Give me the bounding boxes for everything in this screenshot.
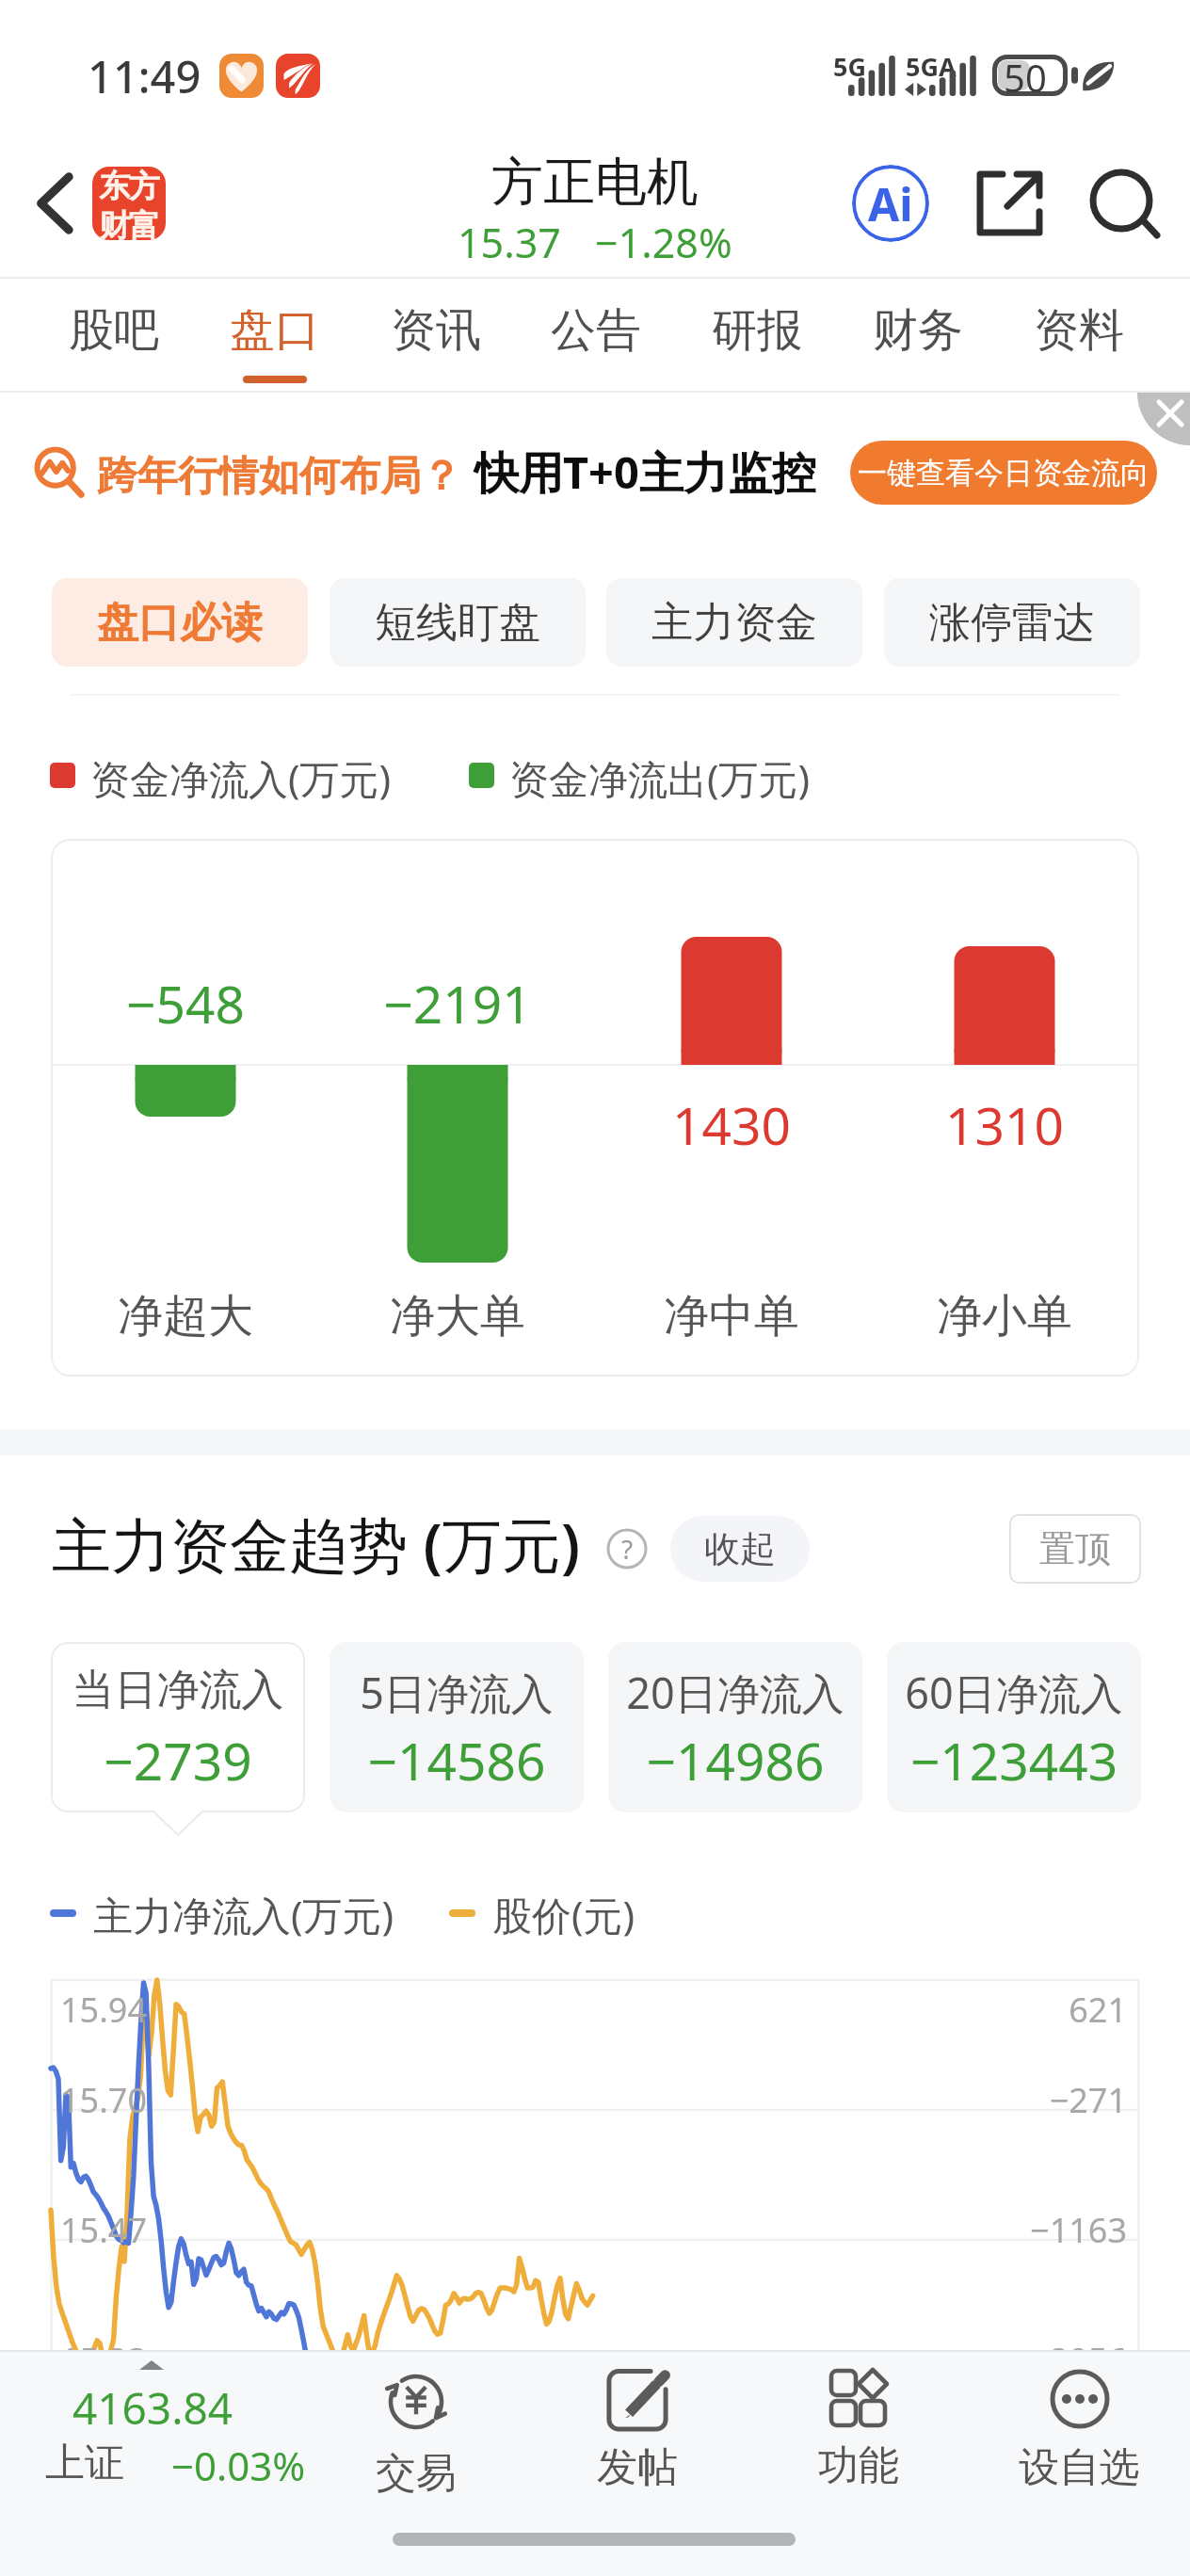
staticText: 财务: [873, 302, 963, 359]
button[interactable]: 盘口: [195, 279, 355, 392]
staticText: 收起: [704, 1526, 776, 1571]
staticText: 盘口: [230, 302, 320, 359]
staticText: 方正电机: [491, 150, 699, 215]
button[interactable]: 5日净流入: [330, 1642, 584, 1812]
staticText: 上证: [45, 2439, 124, 2488]
button[interactable]: 交易: [305, 2352, 526, 2512]
staticText: −123443: [887, 1725, 1141, 1795]
staticText: 涨停雷达: [929, 597, 1095, 649]
staticText: 功能: [818, 2440, 899, 2491]
button[interactable]: East Money home: [92, 167, 166, 240]
staticText: 当日净流入: [51, 1664, 305, 1717]
button[interactable]: 资料: [999, 279, 1159, 392]
staticText: 50: [1004, 52, 1047, 103]
staticText: 财富: [100, 206, 159, 240]
staticText: 1310: [901, 1089, 1108, 1160]
button[interactable]: 设自选: [969, 2352, 1190, 2512]
staticText: 20日净流入: [608, 1664, 862, 1721]
staticText: −548: [82, 968, 289, 1038]
staticText: 公告: [551, 302, 641, 359]
staticText: 盘口必读: [97, 597, 263, 649]
staticText: 主力资金: [651, 597, 817, 649]
button[interactable]: 涨停雷达: [884, 578, 1140, 667]
button[interactable]: 收起: [670, 1516, 810, 1582]
staticText: 资讯: [391, 302, 481, 359]
staticText: 快用T+0主力监控: [474, 442, 816, 502]
staticText: 发帖: [597, 2442, 678, 2493]
staticText: −2191: [354, 968, 561, 1038]
staticText: 15.37: [458, 215, 561, 270]
button[interactable]: AI assistant: [847, 160, 934, 247]
button[interactable]: 资讯: [356, 279, 516, 392]
staticText: 净超大: [82, 1288, 289, 1344]
staticText: 股吧: [69, 302, 159, 359]
staticText: 5日净流入: [330, 1664, 584, 1721]
button[interactable]: 公告: [516, 279, 676, 392]
staticText: 15.23: [60, 2337, 148, 2383]
button[interactable]: 置顶: [1009, 1514, 1141, 1584]
staticText: 股价(元): [492, 1888, 635, 1941]
button[interactable]: 盘口必读: [52, 578, 308, 667]
button[interactable]: 短线盯盘: [330, 578, 586, 667]
button[interactable]: 当日净流入: [51, 1642, 305, 1812]
staticText: 资金净流出(万元): [509, 751, 811, 805]
staticText: 4163.84: [0, 2378, 305, 2438]
staticText: 研报: [712, 302, 802, 359]
staticText: 净小单: [901, 1288, 1108, 1344]
button[interactable]: 4163.84: [0, 2352, 305, 2512]
staticText: 621: [957, 1987, 1127, 2033]
button[interactable]: 60日净流入: [887, 1642, 1141, 1812]
button[interactable]: 主力资金: [606, 578, 862, 667]
staticText: ?: [621, 1531, 634, 1567]
button[interactable]: Back: [13, 162, 96, 245]
staticText: 净大单: [354, 1288, 561, 1344]
button[interactable]: 财务: [838, 279, 998, 392]
staticText: 主力资金趋势 (万元): [52, 1504, 581, 1585]
staticText: 11:49: [88, 46, 201, 106]
staticText: 东方: [100, 167, 159, 206]
staticText: 60日净流入: [887, 1664, 1141, 1721]
staticText: 1430: [628, 1089, 835, 1160]
staticText: 设自选: [1019, 2442, 1140, 2493]
button[interactable]: 功能: [748, 2352, 969, 2512]
button[interactable]: 20日净流入: [608, 1642, 862, 1812]
staticText: −14586: [330, 1725, 584, 1795]
button[interactable]: 股吧: [34, 279, 194, 392]
staticText: 资金净流入(万元): [90, 751, 392, 805]
staticText: 净中单: [628, 1288, 835, 1344]
staticText: Ai: [868, 173, 913, 234]
staticText: 短线盯盘: [375, 597, 540, 649]
button[interactable]: Search: [1076, 160, 1168, 247]
staticText: 15.94: [60, 1987, 148, 2033]
staticText: 5G: [833, 49, 866, 84]
button[interactable]: Close ad: [1137, 393, 1190, 445]
staticText: −2739: [51, 1725, 305, 1795]
staticText: −0.03%: [171, 2439, 306, 2492]
button[interactable]: Help: [606, 1528, 648, 1570]
staticText: 资料: [1034, 302, 1124, 359]
staticText: −1163: [957, 2207, 1127, 2253]
staticText: 15.70: [60, 2077, 148, 2123]
staticText: 一键查看今日资金流向: [858, 455, 1150, 491]
button[interactable]: 一键查看今日资金流向: [850, 441, 1157, 505]
staticText: −14986: [608, 1725, 862, 1795]
staticText: 置顶: [1039, 1526, 1111, 1571]
staticText: −1.28%: [595, 215, 732, 270]
staticText: 交易: [376, 2448, 457, 2499]
staticText: −271: [957, 2077, 1127, 2123]
button[interactable]: Share: [967, 160, 1053, 247]
button[interactable]: 发帖: [526, 2352, 748, 2512]
staticText: 15.47: [60, 2207, 148, 2253]
staticText: −2056: [957, 2337, 1127, 2383]
staticText: 跨年行情如何布局？: [97, 451, 461, 502]
button[interactable]: 研报: [677, 279, 837, 392]
staticText: 5GA: [906, 49, 957, 84]
staticText: 主力净流入(万元): [93, 1888, 394, 1941]
